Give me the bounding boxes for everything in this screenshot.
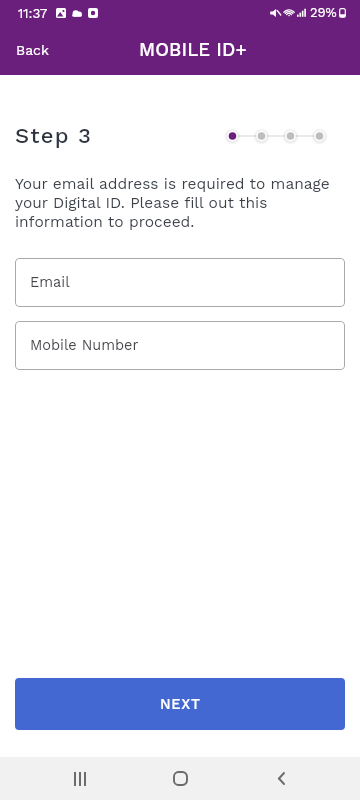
button[interactable]: Back: [259, 757, 303, 800]
button[interactable]: Back: [0, 32, 65, 68]
staticText: Back: [16, 42, 49, 58]
button[interactable]: NEXT: [15, 678, 345, 730]
button[interactable]: Mobile Number: [15, 321, 345, 370]
staticText: MOBILE ID+: [139, 39, 247, 61]
button[interactable]: Email: [15, 258, 345, 307]
button[interactable]: Step 1 of 4: [225, 124, 327, 148]
button[interactable]: Home: [158, 757, 202, 800]
staticText: Mobile Number: [30, 337, 139, 354]
staticText: Step 3: [15, 123, 93, 149]
staticText: NEXT: [160, 696, 201, 713]
staticText: Email: [30, 274, 70, 291]
staticText: 11:37: [18, 5, 48, 21]
button[interactable]: Recent apps: [58, 757, 102, 800]
staticText: 29%: [310, 5, 337, 20]
staticText: Your email address is required to manage…: [15, 175, 345, 231]
